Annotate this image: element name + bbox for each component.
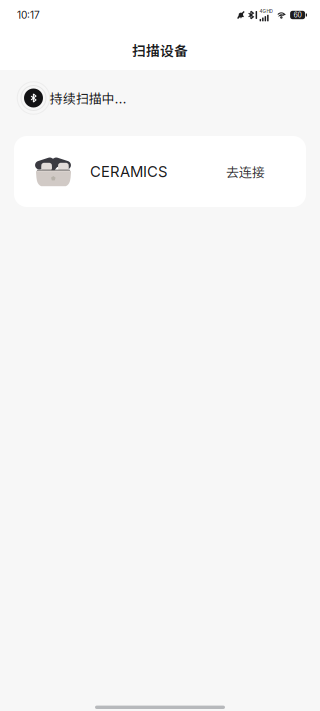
- staticText: 扫描设备: [132, 40, 188, 60]
- button[interactable]: CERAMICS: [14, 136, 306, 207]
- staticText: CERAMICS: [90, 162, 167, 180]
- staticText: 持续扫描中...: [50, 89, 127, 107]
- staticText: 4G HD: [260, 9, 273, 14]
- staticText: 60: [294, 11, 302, 19]
- staticText: 10:17: [17, 9, 40, 21]
- staticText: 去连接: [226, 162, 265, 181]
